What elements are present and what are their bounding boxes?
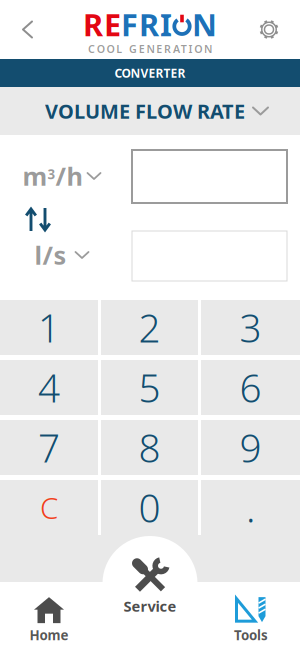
button[interactable]: Tools (211, 585, 291, 645)
staticText: 6 (239, 362, 261, 413)
button[interactable] (132, 150, 287, 203)
button[interactable]: m3/h (7, 161, 117, 191)
staticText: N (192, 4, 217, 45)
button[interactable]: Home (9, 585, 89, 645)
staticText: Service (123, 596, 176, 616)
staticText: 9 (239, 422, 261, 473)
staticText: 0 (138, 482, 160, 533)
button[interactable]: 1 (0, 300, 98, 355)
button[interactable]: . (201, 480, 300, 535)
staticText: 5 (138, 362, 160, 413)
staticText: Home (29, 626, 68, 644)
button[interactable]: 8 (101, 420, 198, 475)
staticText: CONVERTER (114, 65, 185, 81)
staticText: VOLUME FLOW RATE (45, 98, 245, 124)
staticText: m3/h (22, 159, 82, 193)
staticText: Tools (234, 626, 268, 644)
button[interactable]: 3 (201, 300, 300, 355)
staticText: l/s (34, 238, 66, 272)
button[interactable]: 5 (101, 360, 198, 415)
button[interactable]: Service (102, 536, 197, 631)
staticText: COOL GENERATION (88, 42, 212, 56)
button[interactable]: 4 (0, 360, 98, 415)
button[interactable]: l/s (22, 240, 102, 270)
button[interactable]: C (0, 480, 98, 535)
button[interactable] (19, 201, 57, 238)
staticText: 4 (38, 362, 60, 413)
button[interactable]: 9 (201, 420, 300, 475)
button[interactable]: 7 (0, 420, 98, 475)
button[interactable]: 6 (201, 360, 300, 415)
button[interactable] (0, 8, 33, 50)
button[interactable]: 0 (101, 480, 198, 535)
button[interactable]: VOLUME FLOW RATE (0, 87, 300, 135)
button[interactable]: 2 (101, 300, 198, 355)
staticText: . (246, 482, 255, 533)
staticText: RE (83, 4, 121, 45)
staticText: 1 (38, 302, 60, 353)
staticText: 8 (138, 422, 160, 473)
button[interactable] (132, 231, 287, 281)
staticText: 3 (239, 302, 261, 353)
staticText: FRI (121, 4, 172, 45)
staticText: 7 (38, 422, 60, 473)
button[interactable] (258, 6, 300, 52)
staticText: 2 (138, 302, 160, 353)
staticText: C (40, 488, 58, 527)
